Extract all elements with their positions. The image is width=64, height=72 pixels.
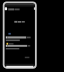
button[interactable]: [4, 7, 20, 11]
button[interactable]: [33, 7, 37, 11]
button[interactable]: [24, 56, 30, 59]
button[interactable]: [5, 36, 31, 42]
button[interactable]: [8, 32, 12, 35]
button[interactable]: [5, 42, 31, 50]
